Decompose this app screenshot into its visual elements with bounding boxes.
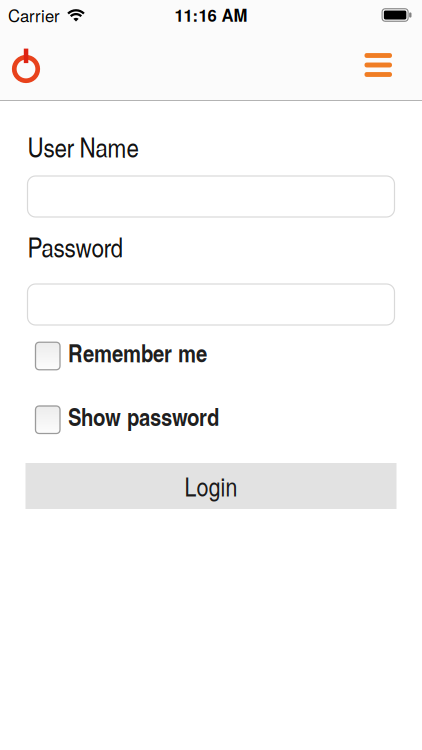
staticText: Remember me (68, 335, 207, 370)
button[interactable]: User Name (27, 176, 394, 217)
button[interactable]: Power (0, 45, 41, 85)
staticText: Show password (68, 399, 219, 434)
staticText: Carrier (8, 3, 60, 27)
staticText: Password (27, 228, 122, 265)
button[interactable]: Password (27, 284, 394, 325)
staticText: User Name (27, 128, 138, 165)
staticText: 11:16 AM (174, 3, 247, 27)
button[interactable]: Login (25, 463, 396, 509)
button[interactable]: Show password (35, 402, 219, 437)
button[interactable]: Remember me (35, 339, 207, 373)
staticText: Login (184, 468, 237, 504)
button[interactable]: Menu (364, 53, 422, 77)
